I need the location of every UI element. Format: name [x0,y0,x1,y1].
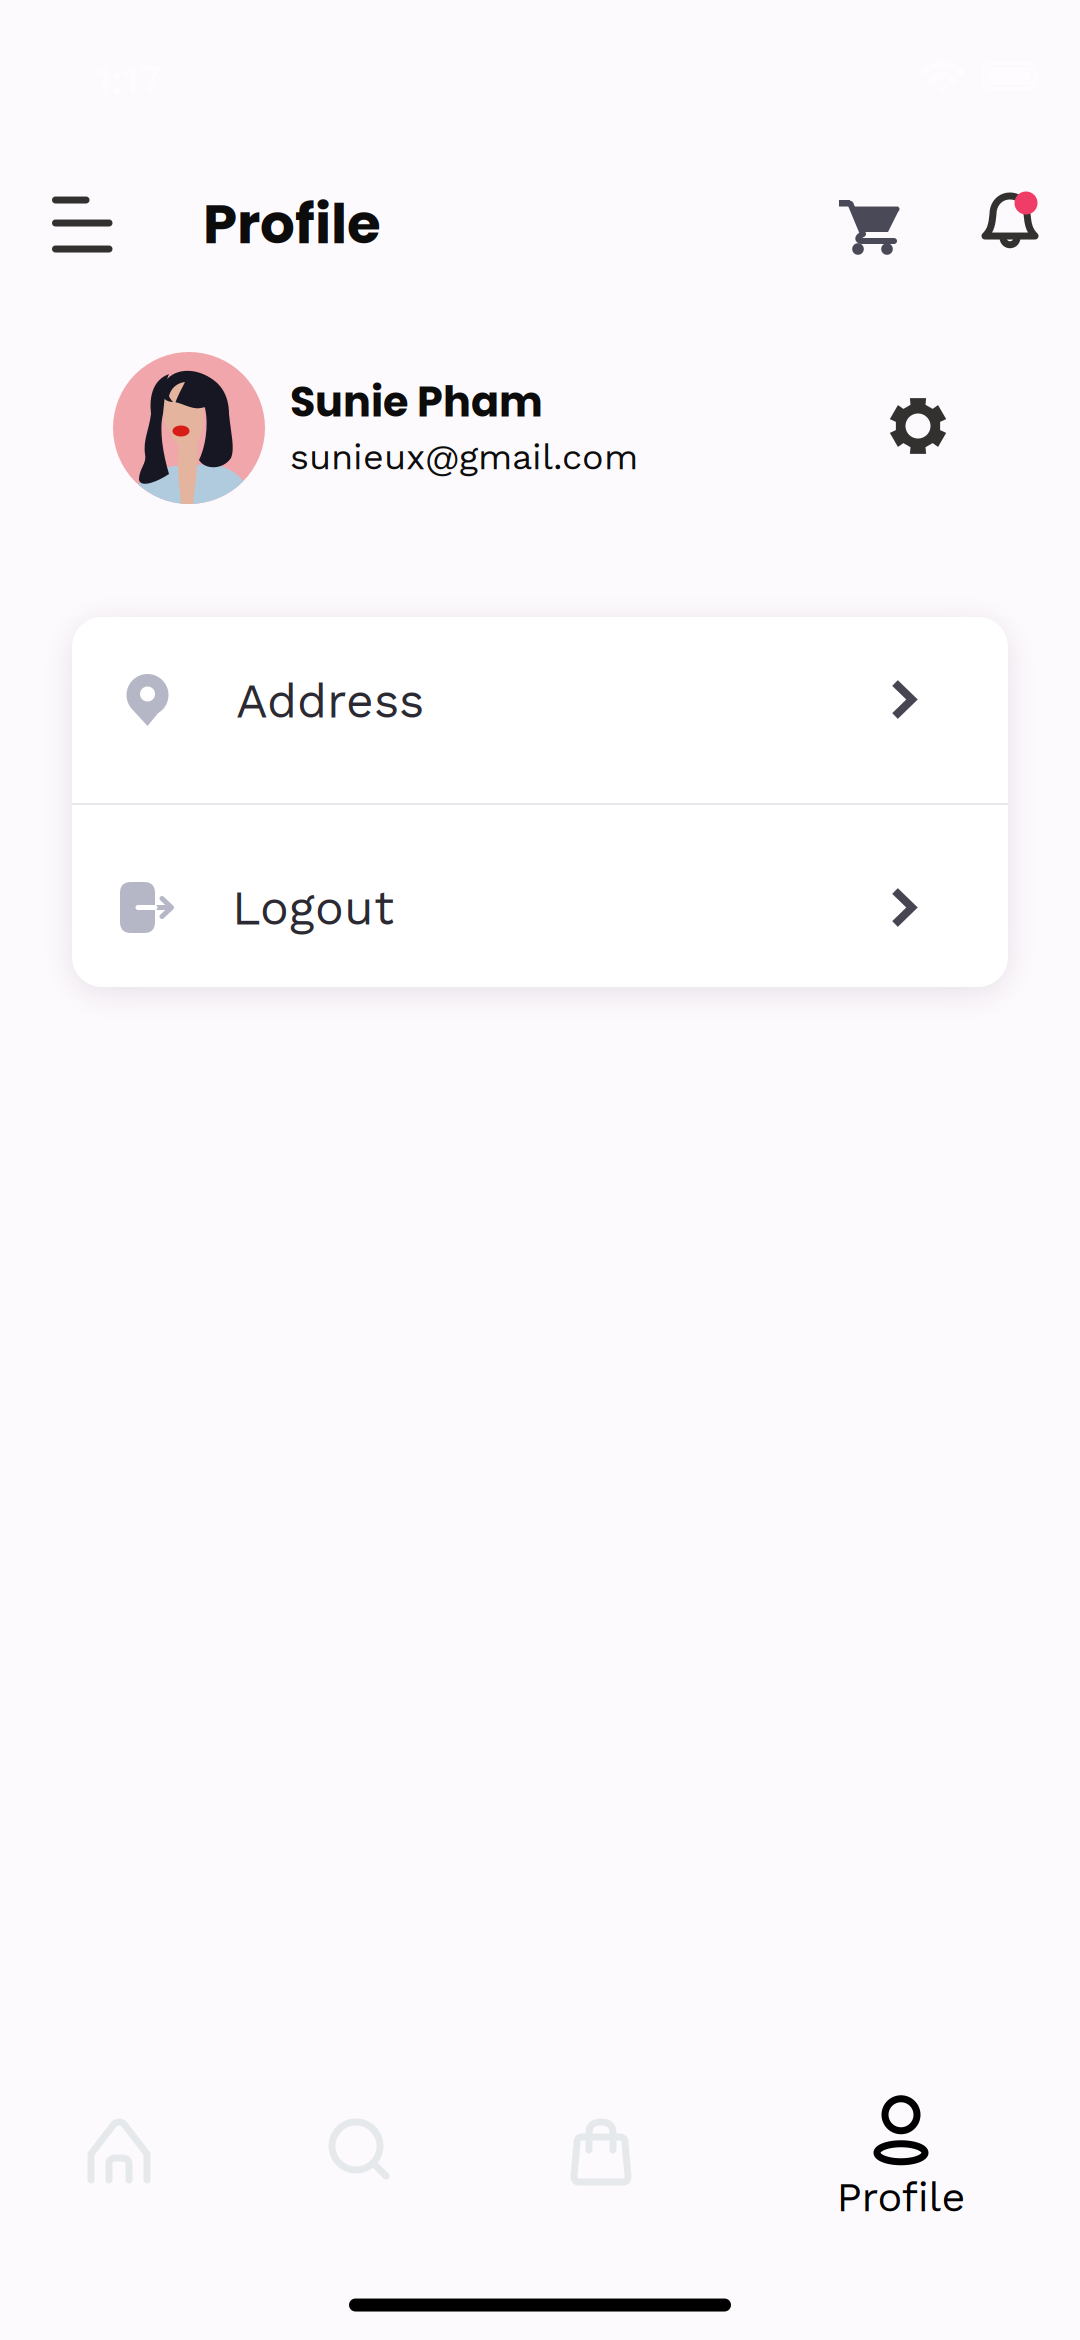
staticText: Profile [836,2173,965,2221]
staticText: Profile [203,186,381,262]
button[interactable]: Shop [547,2095,655,2209]
staticText: Sunie Pham [290,373,543,431]
staticText: sunieux@gmail.com [290,436,638,478]
staticText: Address [236,673,424,729]
staticText: Logout [232,880,394,936]
button[interactable]: Logout [72,805,1008,987]
button[interactable]: Address [72,617,1008,803]
button[interactable]: Home [65,2096,175,2208]
button[interactable]: Menu [31,177,131,273]
button[interactable]: Settings [871,379,965,473]
button[interactable]: Profile [822,2081,979,2235]
button[interactable]: Search [306,2097,412,2207]
button[interactable]: Cart [823,177,917,269]
button[interactable]: Notifications [965,174,1059,268]
